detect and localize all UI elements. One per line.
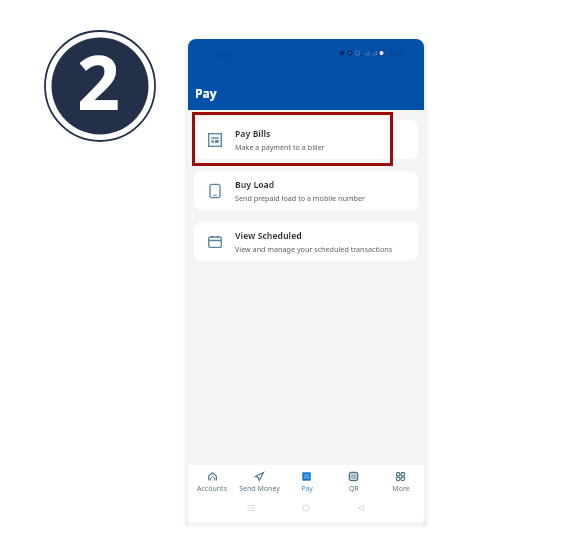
button[interactable]: More [377, 465, 424, 499]
staticText: View Scheduled [235, 230, 302, 242]
button[interactable]: Pay [283, 465, 330, 499]
staticText: Send prepaid load to a mobile number [235, 193, 366, 203]
button[interactable]: Send Money [236, 465, 283, 499]
staticText: Make a payment to a biller [235, 142, 325, 152]
button[interactable]: View Scheduled [194, 222, 418, 261]
staticText: Pay Bills [235, 128, 271, 140]
staticText: 2 [77, 30, 120, 132]
staticText: Pay [195, 85, 217, 101]
staticText: Buy Load [235, 179, 275, 191]
button[interactable]: Recents [243, 500, 259, 516]
staticText: Send Money [239, 484, 280, 494]
staticText: 54% [389, 49, 402, 57]
button[interactable]: Back [353, 500, 369, 516]
staticText: 6:58 [216, 50, 231, 58]
button[interactable]: Buy Load [194, 171, 418, 210]
staticText: Pay [301, 484, 313, 494]
staticText: QR [349, 484, 359, 494]
button[interactable]: Home [298, 500, 314, 516]
button[interactable]: Accounts [188, 465, 236, 499]
staticText: Accounts [197, 484, 227, 494]
button[interactable]: Pay Bills [194, 120, 418, 159]
button[interactable]: QR [330, 465, 377, 499]
staticText: More [392, 484, 410, 494]
staticText: View and manage your scheduled transacti… [235, 244, 393, 254]
